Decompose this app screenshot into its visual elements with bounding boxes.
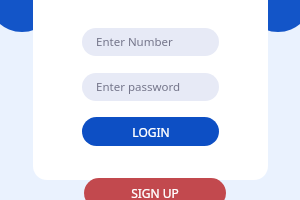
staticText: Enter password [96,79,181,95]
staticText: SIGN UP [131,185,179,200]
button[interactable]: LOGIN [82,117,219,146]
button[interactable]: Enter Number [82,28,219,56]
staticText: Enter Number [96,34,173,50]
button[interactable]: Enter password [82,73,219,101]
button[interactable]: SIGN UP [84,178,226,200]
staticText: LOGIN [132,124,170,140]
